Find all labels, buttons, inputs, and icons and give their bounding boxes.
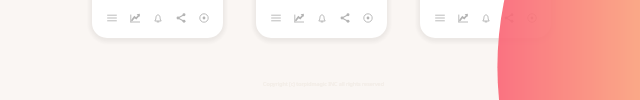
button[interactable]: Analytics bbox=[287, 5, 310, 31]
button[interactable]: Notifications bbox=[310, 5, 333, 31]
button[interactable]: Share bbox=[169, 5, 192, 31]
button[interactable]: Record bbox=[356, 5, 379, 31]
button[interactable]: Notifications bbox=[474, 5, 497, 31]
button[interactable]: List bbox=[428, 5, 451, 31]
button[interactable]: Share bbox=[333, 5, 356, 31]
button[interactable]: List bbox=[100, 5, 123, 31]
button[interactable]: Notifications bbox=[146, 5, 169, 31]
button[interactable]: List bbox=[264, 5, 287, 31]
button[interactable]: Analytics bbox=[123, 5, 146, 31]
button[interactable]: Share bbox=[497, 5, 520, 31]
button[interactable]: Analytics bbox=[451, 5, 474, 31]
staticText: Copyright (c) torpidmagic INC all rights… bbox=[263, 80, 384, 87]
button[interactable]: Record bbox=[192, 5, 215, 31]
